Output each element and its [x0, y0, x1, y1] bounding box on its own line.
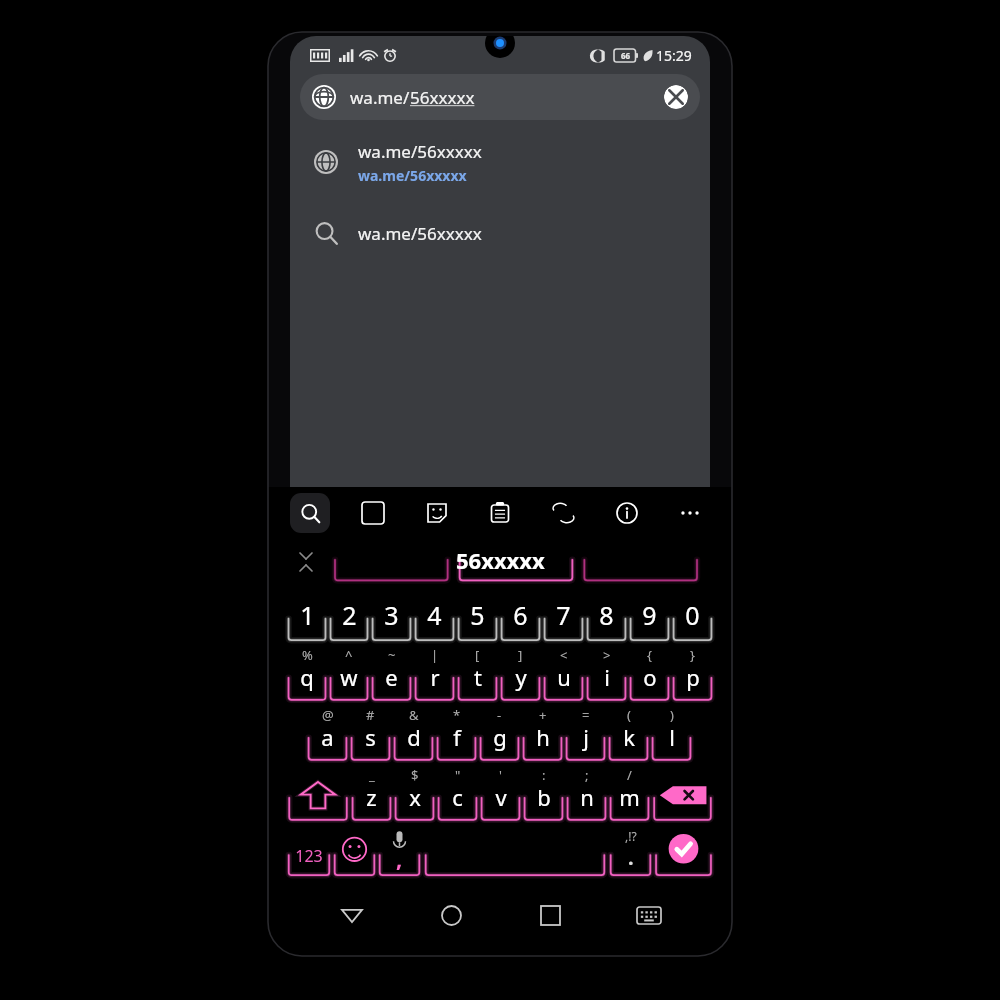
- staticText: ,!?: [625, 828, 637, 844]
- button[interactable]: ~: [370, 644, 413, 704]
- staticText: ,: [396, 843, 403, 873]
- staticText: #: [366, 706, 375, 724]
- button[interactable]: 56xxxxx: [456, 545, 545, 575]
- button[interactable]: 4: [413, 589, 456, 644]
- button[interactable]: 123: [286, 824, 332, 879]
- button[interactable]: |: [413, 644, 456, 704]
- button[interactable]: %: [286, 644, 328, 704]
- button[interactable]: Emoji: [332, 824, 377, 879]
- staticText: wa.me/: [350, 86, 410, 109]
- button[interactable]: 0: [671, 589, 714, 644]
- button[interactable]: 1: [286, 589, 328, 644]
- staticText: ': [499, 766, 502, 784]
- button[interactable]: GIF: [353, 493, 393, 533]
- button[interactable]: &: [392, 704, 435, 764]
- button[interactable]: /: [608, 764, 651, 824]
- button[interactable]: }: [671, 644, 714, 704]
- staticText: %: [302, 646, 313, 664]
- staticText: w: [340, 662, 358, 692]
- button[interactable]: Info: [607, 493, 647, 533]
- button[interactable]: 6: [499, 589, 542, 644]
- button[interactable]: {: [628, 644, 671, 704]
- button[interactable]: wa.me/56xxxxx: [290, 210, 710, 256]
- button[interactable]: Shift: [286, 764, 350, 824]
- staticText: t: [474, 662, 482, 692]
- button[interactable]: More options: [670, 493, 710, 533]
- staticText: d: [407, 722, 421, 752]
- button[interactable]: ': [479, 764, 522, 824]
- staticText: ]: [518, 646, 523, 664]
- button[interactable]: ,!?: [608, 824, 653, 879]
- button[interactable]: wa.me/: [300, 74, 700, 120]
- staticText: <: [560, 646, 568, 664]
- staticText: n: [580, 782, 594, 812]
- staticText: wa.me/56xxxxx: [358, 140, 482, 163]
- button[interactable]: 3: [370, 589, 413, 644]
- button[interactable]: +: [521, 704, 564, 764]
- button[interactable]: #: [349, 704, 392, 764]
- staticText: ): [670, 706, 674, 724]
- staticText: e: [385, 662, 398, 692]
- button[interactable]: [: [456, 644, 499, 704]
- button[interactable]: <: [542, 644, 585, 704]
- button[interactable]: :: [522, 764, 565, 824]
- staticText: c: [452, 782, 463, 812]
- button[interactable]: ): [650, 704, 693, 764]
- button[interactable]: Clear: [664, 85, 688, 109]
- button[interactable]: Back: [330, 893, 374, 937]
- button[interactable]: ^: [328, 644, 370, 704]
- button[interactable]: ": [436, 764, 479, 824]
- button[interactable]: >: [585, 644, 628, 704]
- staticText: 0: [685, 598, 700, 632]
- staticText: 3: [384, 598, 399, 632]
- staticText: r: [430, 662, 440, 692]
- button[interactable]: 8: [585, 589, 628, 644]
- staticText: |: [431, 646, 439, 664]
- staticText: 6: [513, 598, 528, 632]
- button[interactable]: -: [478, 704, 521, 764]
- staticText: h: [536, 722, 550, 752]
- staticText: s: [365, 722, 376, 752]
- button[interactable]: @: [306, 704, 349, 764]
- button[interactable]: ;: [565, 764, 608, 824]
- button[interactable]: _: [350, 764, 393, 824]
- button[interactable]: Clipboard: [480, 493, 520, 533]
- staticText: 8: [599, 598, 614, 632]
- button[interactable]: Recents: [528, 893, 572, 937]
- button[interactable]: 5: [456, 589, 499, 644]
- staticText: 123: [295, 845, 323, 867]
- staticText: o: [643, 662, 657, 692]
- button[interactable]: Translate: [543, 493, 583, 533]
- button[interactable]: wa.me/56xxxxx: [290, 132, 710, 192]
- staticText: 1: [300, 598, 315, 632]
- button[interactable]: 7: [542, 589, 585, 644]
- button[interactable]: (: [607, 704, 650, 764]
- staticText: q: [300, 662, 314, 692]
- staticText: b: [537, 782, 551, 812]
- button[interactable]: =: [564, 704, 607, 764]
- staticText: =: [582, 706, 590, 724]
- button[interactable]: Enter: [653, 824, 714, 879]
- staticText: _: [369, 766, 375, 784]
- button[interactable]: *: [435, 704, 478, 764]
- button[interactable]: ,: [377, 824, 422, 879]
- button[interactable]: $: [393, 764, 436, 824]
- staticText: ": [455, 766, 461, 784]
- staticText: *: [453, 706, 461, 724]
- staticText: a: [321, 722, 334, 752]
- button[interactable]: Space: [422, 824, 608, 879]
- staticText: &: [409, 706, 419, 724]
- button[interactable]: ]: [499, 644, 542, 704]
- button[interactable]: Search: [290, 493, 330, 533]
- staticText: p: [686, 662, 700, 692]
- staticText: wa.me/56xxxxx: [358, 166, 467, 185]
- button[interactable]: 9: [628, 589, 671, 644]
- button[interactable]: Backspace: [651, 764, 714, 824]
- staticText: 2: [342, 598, 357, 632]
- button[interactable]: Stickers: [417, 493, 457, 533]
- button[interactable]: Keyboard: [627, 893, 671, 937]
- staticText: 15:29: [656, 46, 692, 65]
- button[interactable]: 2: [328, 589, 370, 644]
- staticText: i: [604, 662, 610, 692]
- button[interactable]: Home: [429, 893, 473, 937]
